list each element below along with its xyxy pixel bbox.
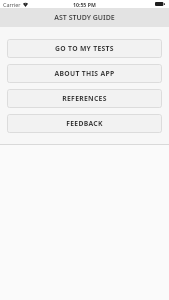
staticText: FEEDBACK [66,119,103,128]
staticText: GO TO MY TESTS [55,44,114,53]
staticText: AST STUDY GUIDE [54,13,115,23]
staticText: Carrier [3,1,21,8]
staticText: 10:55 PM [73,1,96,8]
button[interactable]: FEEDBACK [7,114,162,133]
staticText: REFERENCES [62,94,107,103]
staticText: ABOUT THIS APP [54,69,115,78]
button[interactable]: ABOUT THIS APP [7,64,162,83]
button[interactable]: REFERENCES [7,89,162,108]
button[interactable]: GO TO MY TESTS [7,39,162,58]
